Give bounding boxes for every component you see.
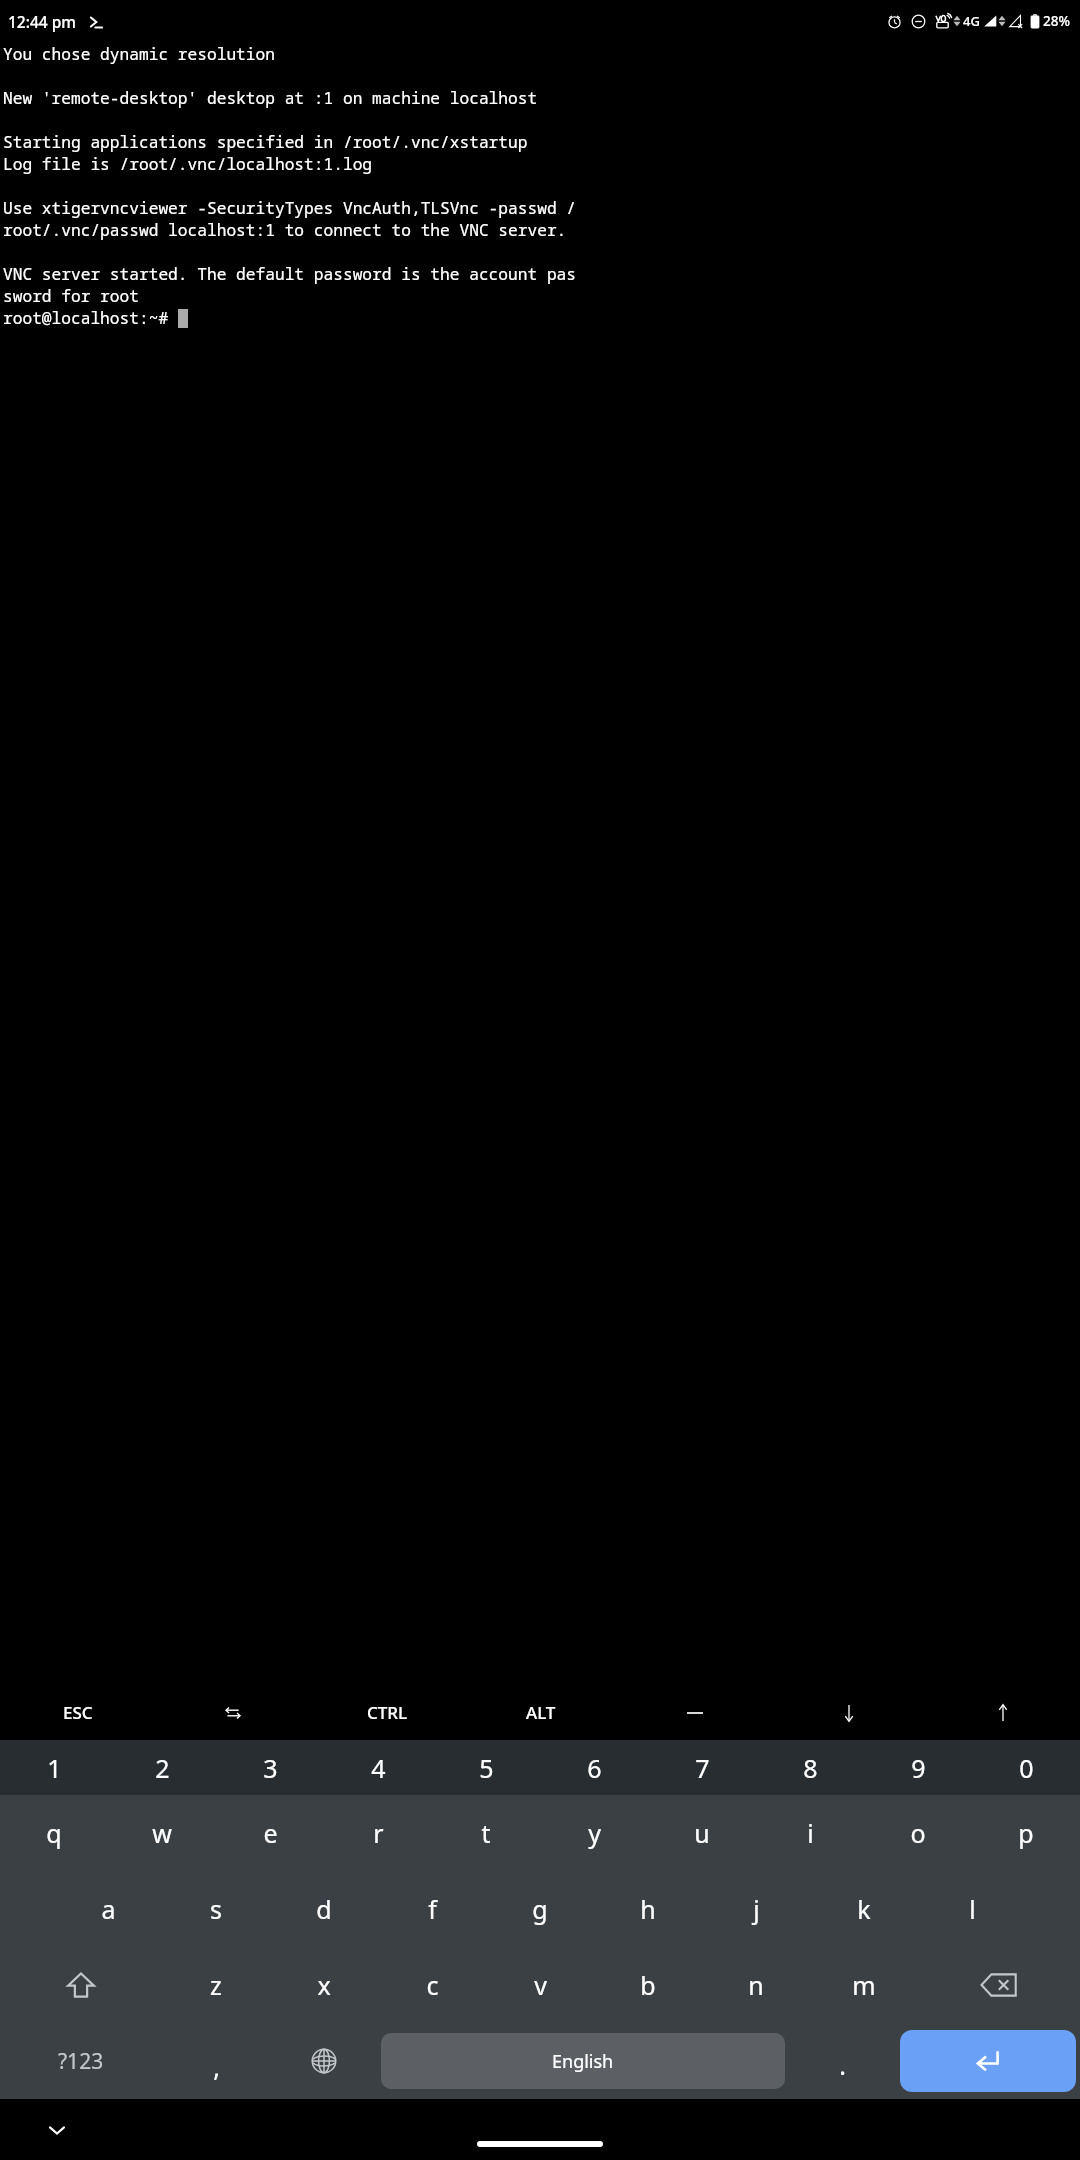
- button[interactable]: a: [54, 1871, 162, 1947]
- button[interactable]: 3: [216, 1740, 324, 1795]
- staticText: ALT: [526, 1701, 556, 1724]
- staticText: 28%: [1043, 12, 1070, 30]
- button[interactable]: b: [594, 1947, 702, 2023]
- staticText: .: [839, 2048, 846, 2082]
- staticText: t: [481, 1816, 491, 1850]
- staticText: CTRL: [367, 1701, 408, 1724]
- button[interactable]: You chose dynamic resolution: [0, 42, 1080, 1685]
- staticText: a: [101, 1892, 116, 1926]
- staticText: 4G: [963, 12, 980, 30]
- staticText: VNC server started. The default password…: [3, 263, 577, 285]
- button[interactable]: c: [378, 1947, 486, 2023]
- staticText: 12:44 pm: [8, 11, 76, 32]
- staticText: Starting applications specified in /root…: [3, 131, 528, 153]
- staticText: 0: [1019, 1751, 1034, 1785]
- staticText: 6: [587, 1751, 602, 1785]
- button[interactable]: d: [270, 1871, 378, 1947]
- button[interactable]: t: [432, 1795, 540, 1871]
- button[interactable]: p: [972, 1795, 1080, 1871]
- staticText: e: [263, 1816, 278, 1850]
- button[interactable]: m: [810, 1947, 918, 2023]
- button[interactable]: u: [648, 1795, 756, 1871]
- staticText: 3: [263, 1751, 278, 1785]
- staticText: root@localhost:~#: [3, 307, 178, 329]
- button[interactable]: i: [756, 1795, 864, 1871]
- staticText: 8: [803, 1751, 818, 1785]
- button[interactable]: ESC: [0, 1685, 155, 1740]
- staticText: 2: [155, 1751, 170, 1785]
- button[interactable]: CTRL: [310, 1685, 464, 1740]
- staticText: 5: [479, 1751, 494, 1785]
- button[interactable]: ,: [162, 2023, 270, 2099]
- staticText: s: [210, 1892, 222, 1926]
- staticText: h: [640, 1892, 656, 1926]
- button[interactable]: Enter: [900, 2030, 1076, 2092]
- staticText: y: [588, 1816, 601, 1850]
- button[interactable]: k: [810, 1871, 918, 1947]
- button[interactable]: x: [270, 1947, 378, 2023]
- button[interactable]: y: [540, 1795, 648, 1871]
- staticText: b: [640, 1968, 656, 2002]
- staticText: ESC: [63, 1701, 93, 1724]
- button[interactable]: q: [0, 1795, 108, 1871]
- button[interactable]: ?123: [0, 2023, 162, 2099]
- button[interactable]: Tab: [155, 1685, 310, 1740]
- button[interactable]: z: [162, 1947, 270, 2023]
- staticText: ,: [213, 2050, 220, 2084]
- button[interactable]: g: [486, 1871, 594, 1947]
- button[interactable]: w: [108, 1795, 216, 1871]
- button[interactable]: 6: [540, 1740, 648, 1795]
- button[interactable]: Hide keyboard: [40, 2113, 74, 2147]
- button[interactable]: ALT: [464, 1685, 618, 1740]
- staticText: 4: [371, 1751, 386, 1785]
- staticText: o: [910, 1816, 926, 1850]
- button[interactable]: j: [702, 1871, 810, 1947]
- staticText: English: [552, 2049, 614, 2074]
- button[interactable]: 8: [756, 1740, 864, 1795]
- button[interactable]: 5: [432, 1740, 540, 1795]
- staticText: u: [694, 1816, 710, 1850]
- button[interactable]: Arrow up: [926, 1685, 1080, 1740]
- staticText: 1: [47, 1751, 62, 1785]
- button[interactable]: 0: [972, 1740, 1080, 1795]
- staticText: v: [534, 1968, 547, 2002]
- staticText: 9: [911, 1751, 926, 1785]
- button[interactable]: Minus: [618, 1685, 772, 1740]
- staticText: sword for root: [3, 285, 139, 307]
- staticText: p: [1018, 1816, 1034, 1850]
- button[interactable]: o: [864, 1795, 972, 1871]
- staticText: ?123: [58, 2047, 104, 2076]
- button[interactable]: r: [324, 1795, 432, 1871]
- button[interactable]: English: [381, 2033, 785, 2089]
- button[interactable]: 7: [648, 1740, 756, 1795]
- button[interactable]: 1: [0, 1740, 108, 1795]
- staticText: g: [532, 1892, 548, 1926]
- button[interactable]: Arrow down: [772, 1685, 926, 1740]
- staticText: root/.vnc/passwd localhost:1 to connect …: [3, 219, 567, 241]
- staticText: m: [852, 1968, 876, 2002]
- button[interactable]: 9: [864, 1740, 972, 1795]
- button[interactable]: 2: [108, 1740, 216, 1795]
- button[interactable]: v: [486, 1947, 594, 2023]
- staticText: d: [316, 1892, 332, 1926]
- staticText: z: [210, 1968, 222, 2002]
- staticText: w: [152, 1816, 172, 1850]
- staticText: j: [753, 1892, 760, 1926]
- button[interactable]: Backspace: [918, 1947, 1080, 2023]
- button[interactable]: l: [918, 1871, 1026, 1947]
- staticText: f: [428, 1892, 437, 1926]
- button[interactable]: .: [788, 2023, 896, 2099]
- button[interactable]: Shift: [0, 1947, 162, 2023]
- button[interactable]: n: [702, 1947, 810, 2023]
- button[interactable]: f: [378, 1871, 486, 1947]
- button[interactable]: s: [162, 1871, 270, 1947]
- button[interactable]: 4: [324, 1740, 432, 1795]
- button[interactable]: e: [216, 1795, 324, 1871]
- staticText: Use xtigervncviewer -SecurityTypes VncAu…: [3, 197, 577, 219]
- staticText: n: [748, 1968, 764, 2002]
- staticText: l: [969, 1892, 976, 1926]
- button[interactable]: h: [594, 1871, 702, 1947]
- staticText: c: [426, 1968, 439, 2002]
- staticText: q: [46, 1816, 62, 1850]
- button[interactable]: Change language: [270, 2023, 378, 2099]
